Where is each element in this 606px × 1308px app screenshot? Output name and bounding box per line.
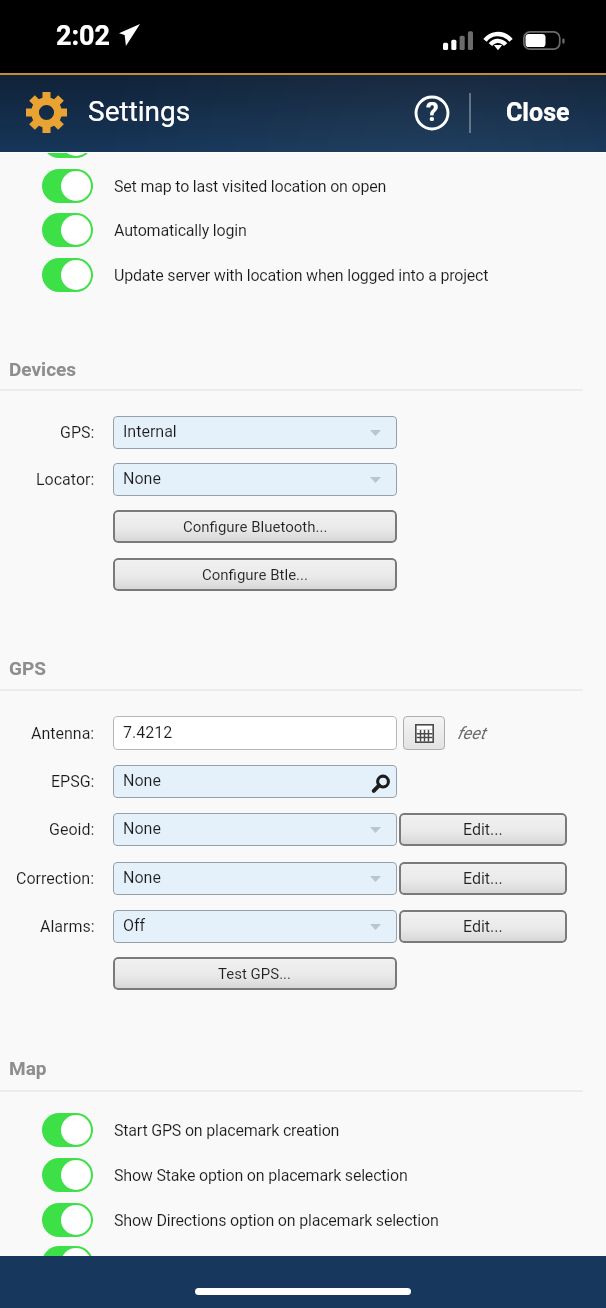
- button[interactable]: Update server with location when logged …: [0, 258, 606, 292]
- staticText: None: [123, 771, 161, 790]
- staticText: 7.4212: [123, 723, 173, 742]
- button[interactable]: Edit...: [399, 862, 567, 895]
- button[interactable]: Internal: [113, 416, 397, 449]
- staticText: Geoid:: [49, 820, 95, 839]
- staticText: Alarms:: [40, 917, 95, 936]
- staticText: Settings: [88, 95, 191, 128]
- staticText: None: [123, 819, 161, 838]
- button[interactable]: None: [113, 813, 397, 846]
- button[interactable]: None: [113, 463, 397, 496]
- staticText: Configure Btle...: [202, 566, 308, 584]
- button[interactable]: Automatically login: [0, 213, 606, 247]
- button[interactable]: Configure Bluetooth...: [113, 510, 397, 543]
- staticText: feet: [457, 723, 486, 743]
- staticText: Show Stake option on placemark selection: [114, 1166, 408, 1185]
- button[interactable]: Show Directions option on placemark sele…: [0, 1203, 606, 1237]
- button[interactable]: Configure Btle...: [113, 558, 397, 591]
- button[interactable]: Show Stake option on placemark selection: [0, 1158, 606, 1192]
- staticText: Close: [506, 98, 570, 127]
- button[interactable]: None: [113, 765, 397, 798]
- button[interactable]: Toggle: [42, 124, 93, 158]
- button[interactable]: 7.4212: [113, 716, 397, 750]
- button[interactable]: Calculator: [403, 716, 445, 750]
- button[interactable]: Test GPS...: [113, 957, 397, 990]
- button[interactable]: Close: [489, 86, 587, 139]
- staticText: Off: [123, 916, 146, 935]
- button[interactable]: Settings: [26, 92, 67, 133]
- staticText: ?: [426, 98, 439, 127]
- staticText: Start GPS on placemark creation: [114, 1121, 340, 1140]
- staticText: Map: [9, 1057, 47, 1079]
- staticText: EPSG:: [51, 772, 95, 791]
- button[interactable]: None: [113, 862, 397, 895]
- staticText: None: [123, 868, 161, 887]
- staticText: Internal: [123, 422, 177, 441]
- button[interactable]: Edit...: [399, 813, 567, 846]
- staticText: Set map to last visited location on open: [114, 177, 387, 196]
- staticText: Correction:: [16, 869, 95, 888]
- staticText: Configure Bluetooth...: [183, 518, 328, 536]
- button[interactable]: Set map to last visited location on open: [0, 169, 606, 203]
- staticText: None: [123, 469, 161, 488]
- staticText: Devices: [9, 358, 77, 380]
- staticText: 2:02: [56, 20, 111, 52]
- button[interactable]: Help: [405, 86, 459, 140]
- staticText: GPS:: [60, 423, 95, 442]
- button[interactable]: Start GPS on placemark creation: [0, 1113, 606, 1147]
- staticText: Locator:: [36, 470, 95, 489]
- staticText: Update server with location when logged …: [114, 266, 489, 285]
- staticText: GPS: [9, 657, 46, 679]
- button[interactable]: Off: [113, 910, 397, 943]
- staticText: Edit...: [463, 917, 503, 936]
- staticText: Edit...: [463, 820, 503, 839]
- button[interactable]: Toggle: [42, 1246, 93, 1280]
- button[interactable]: Edit...: [399, 910, 567, 943]
- staticText: Antenna:: [31, 724, 95, 743]
- staticText: Automatically login: [114, 221, 247, 240]
- staticText: Edit...: [463, 869, 503, 888]
- staticText: Test GPS...: [218, 965, 292, 983]
- staticText: Show Directions option on placemark sele…: [114, 1211, 439, 1230]
